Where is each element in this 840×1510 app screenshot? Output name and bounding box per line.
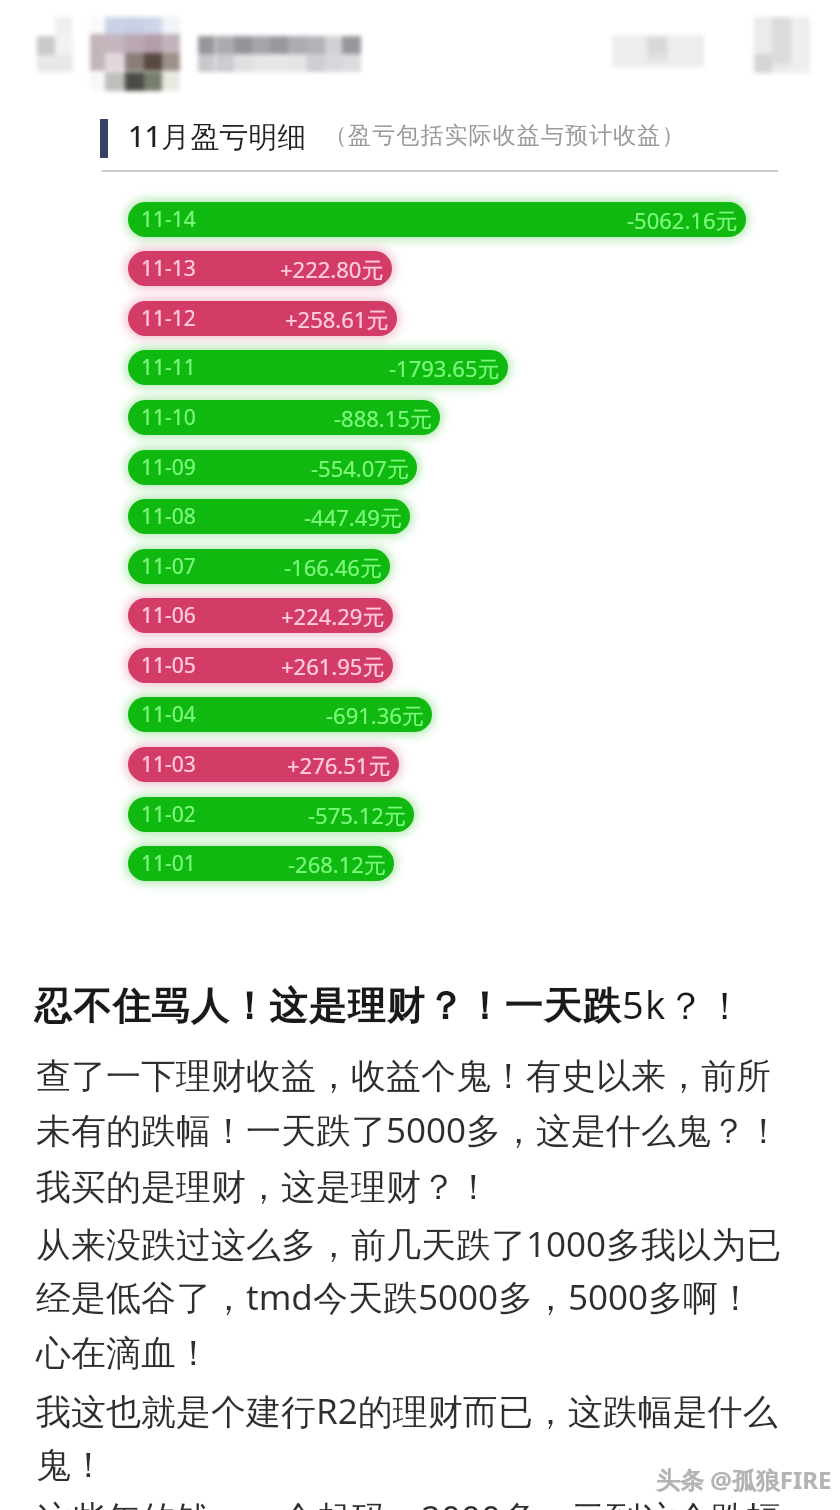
staticText: 11-10: [141, 403, 196, 432]
staticText: -691.36元: [326, 700, 424, 730]
button[interactable]: 11-03: [128, 747, 399, 782]
staticText: -5062.16元: [627, 205, 738, 235]
button[interactable]: 11-09: [128, 450, 417, 485]
staticText: 未有的跌幅！一天跌了5000多，这是什么鬼？！: [36, 1106, 782, 1154]
button[interactable]: 未有的跌幅！一天跌了5000多，这是什么鬼？！: [36, 1106, 782, 1154]
staticText: 11-12: [141, 304, 196, 333]
staticText: 从来没跌过这么多，前几天跌了1000多我以为已: [36, 1220, 782, 1268]
staticText: 11月盈亏明细: [128, 116, 307, 156]
staticText: -268.12元: [288, 849, 386, 879]
staticText: 心在滴血！: [36, 1331, 211, 1375]
staticText: +222.80元: [280, 254, 384, 284]
staticText: 11-06: [141, 601, 196, 630]
button[interactable]: 11-04: [128, 697, 432, 732]
button[interactable]: 11-14: [128, 202, 746, 237]
staticText: 11-02: [141, 800, 196, 829]
staticText: 11-05: [141, 651, 196, 680]
staticText: 11-04: [141, 700, 196, 729]
staticText: 忍不住骂人！这是理财？！一天跌5k？！: [34, 978, 745, 1030]
staticText: -888.15元: [334, 403, 432, 433]
staticText: 11-14: [141, 205, 196, 234]
staticText: 鬼！: [36, 1443, 106, 1487]
button[interactable]: 我这也就是个建行R2的理财而已，这跌幅是什么: [36, 1387, 778, 1435]
staticText: 11-01: [141, 849, 196, 878]
button[interactable]: 鬼！: [36, 1443, 106, 1487]
staticText: 11-11: [141, 353, 196, 382]
staticText: -1793.65元: [389, 353, 500, 383]
staticText: 这些年的钱，一个起码，2000多，亏到这个跌幅: [36, 1494, 782, 1510]
staticText: 头条 @孤狼FIRE: [656, 1463, 832, 1496]
staticText: 经是低谷了，tmd今天跌5000多，5000多啊！: [36, 1273, 754, 1321]
staticText: -554.07元: [311, 453, 409, 483]
staticText: -166.46元: [284, 552, 382, 582]
staticText: 11-07: [141, 552, 196, 581]
staticText: 我买的是理财，这是理财？！: [36, 1165, 491, 1209]
button[interactable]: 这些年的钱，一个起码，2000多，亏到这个跌幅: [36, 1494, 782, 1510]
staticText: （盈亏包括实际收益与预计收益）: [324, 121, 686, 150]
staticText: 11-03: [141, 750, 196, 779]
staticText: -447.49元: [304, 502, 402, 532]
staticText: +224.29元: [281, 601, 385, 631]
button[interactable]: 11-08: [128, 499, 410, 534]
button[interactable]: 11-13: [128, 251, 392, 286]
button[interactable]: 从来没跌过这么多，前几天跌了1000多我以为已: [36, 1220, 782, 1268]
button[interactable]: 心在滴血！: [36, 1331, 211, 1375]
staticText: +276.51元: [287, 750, 391, 780]
button[interactable]: 忍不住骂人！这是理财？！一天跌5k？！: [34, 978, 745, 1030]
button[interactable]: 11-10: [128, 400, 440, 435]
staticText: +261.95元: [281, 651, 385, 681]
staticText: -575.12元: [308, 800, 406, 830]
button[interactable]: 经是低谷了，tmd今天跌5000多，5000多啊！: [36, 1273, 754, 1321]
button[interactable]: 11-01: [128, 846, 394, 881]
staticText: 11-08: [141, 502, 196, 531]
button[interactable]: 11-11: [128, 350, 508, 385]
button[interactable]: 11-02: [128, 797, 414, 832]
button[interactable]: 11-06: [128, 598, 393, 633]
staticText: 11-13: [141, 254, 196, 283]
staticText: 我这也就是个建行R2的理财而已，这跌幅是什么: [36, 1387, 778, 1435]
button[interactable]: 我买的是理财，这是理财？！: [36, 1165, 491, 1209]
button[interactable]: 11-12: [128, 301, 397, 336]
button[interactable]: 查了一下理财收益，收益个鬼！有史以来，前所: [36, 1054, 771, 1098]
button[interactable]: 11-05: [128, 648, 393, 683]
staticText: 查了一下理财收益，收益个鬼！有史以来，前所: [36, 1054, 771, 1098]
button[interactable]: 11-07: [128, 549, 390, 584]
staticText: 11-09: [141, 453, 196, 482]
staticText: +258.61元: [285, 304, 389, 334]
